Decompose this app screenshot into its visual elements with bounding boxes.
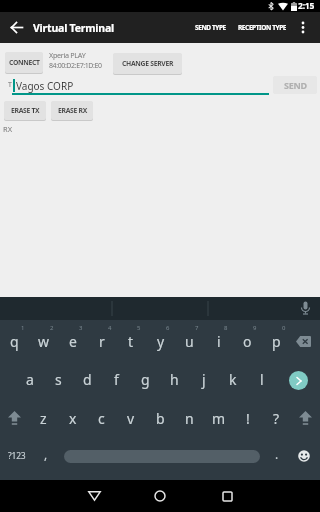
staticText: m: [212, 409, 226, 428]
button[interactable]: !: [233, 401, 262, 435]
button[interactable]: j: [189, 362, 218, 396]
staticText: n: [185, 409, 194, 428]
staticText: CONNECT: [9, 58, 40, 67]
staticText: b: [156, 409, 165, 428]
button[interactable]: z: [29, 401, 58, 435]
staticText: c: [98, 409, 105, 428]
button[interactable]: h: [160, 362, 189, 396]
staticText: CHANGE SERVER: [122, 59, 174, 68]
button[interactable]: CHANGE SERVER: [113, 53, 182, 74]
button[interactable]: q: [0, 324, 29, 358]
button[interactable]: d: [73, 362, 102, 396]
button[interactable]: b: [146, 401, 175, 435]
staticText: f: [114, 370, 119, 389]
button[interactable]: a: [15, 362, 44, 396]
button[interactable]: ERASE TX: [4, 101, 46, 120]
staticText: p: [272, 332, 281, 351]
button[interactable]: SEND: [273, 76, 317, 94]
button[interactable]: ,: [33, 437, 58, 471]
staticText: SEND TYPE: [195, 23, 226, 32]
staticText: 1: [21, 324, 25, 332]
staticText: r: [99, 332, 105, 351]
staticText: h: [170, 370, 179, 389]
button[interactable]: [0, 297, 320, 320]
button[interactable]: [281, 362, 315, 398]
staticText: d: [83, 370, 92, 389]
button[interactable]: v: [116, 401, 145, 435]
button[interactable]: ?: [262, 401, 291, 435]
button[interactable]: [288, 324, 318, 358]
staticText: q: [10, 332, 19, 351]
staticText: .: [275, 446, 279, 462]
staticText: o: [243, 332, 252, 351]
staticText: x: [69, 409, 77, 428]
button[interactable]: [295, 15, 313, 40]
button[interactable]: SEND TYPE: [188, 12, 232, 43]
staticText: t: [128, 332, 134, 351]
button[interactable]: [5, 15, 29, 39]
button[interactable]: g: [131, 362, 160, 396]
button[interactable]: [0, 401, 29, 435]
staticText: 3: [79, 324, 83, 332]
staticText: s: [55, 370, 62, 389]
button[interactable]: .: [264, 437, 289, 471]
staticText: 7: [195, 324, 199, 332]
staticText: ,: [44, 446, 48, 462]
button[interactable]: o: [233, 324, 262, 358]
button[interactable]: e: [58, 324, 87, 358]
button[interactable]: [291, 401, 320, 435]
button[interactable]: ?123: [0, 439, 33, 473]
staticText: 5: [137, 324, 141, 332]
button[interactable]: k: [218, 362, 247, 396]
button[interactable]: c: [87, 401, 116, 435]
button[interactable]: p: [262, 324, 291, 358]
staticText: i: [217, 332, 221, 351]
button[interactable]: f: [102, 362, 131, 396]
staticText: ERASE RX: [58, 106, 87, 115]
staticText: RECEPTION TYPE: [238, 23, 287, 32]
button[interactable]: i: [204, 324, 233, 358]
staticText: 84:00:D2:E7:1D:E0: [49, 61, 102, 71]
staticText: ERASE TX: [11, 106, 40, 115]
button[interactable]: t: [116, 324, 145, 358]
staticText: a: [26, 370, 34, 389]
staticText: z: [40, 409, 47, 428]
staticText: 2: [50, 324, 54, 332]
button[interactable]: CONNECT: [5, 52, 43, 73]
button[interactable]: y: [146, 324, 175, 358]
button[interactable]: [140, 480, 180, 512]
button[interactable]: Vagos CORP: [16, 78, 266, 93]
staticText: 4: [108, 324, 112, 332]
button[interactable]: ERASE RX: [51, 101, 93, 120]
staticText: 9: [253, 324, 257, 332]
button[interactable]: n: [175, 401, 204, 435]
staticText: !: [246, 409, 250, 428]
staticText: w: [38, 332, 50, 351]
button[interactable]: [207, 480, 247, 512]
staticText: RX: [3, 124, 13, 134]
staticText: u: [185, 332, 194, 351]
staticText: 8: [224, 324, 228, 332]
button[interactable]: r: [87, 324, 116, 358]
button[interactable]: x: [58, 401, 87, 435]
staticText: 0: [282, 324, 286, 332]
staticText: j: [202, 370, 206, 389]
button[interactable]: s: [44, 362, 73, 396]
button[interactable]: [290, 439, 318, 473]
staticText: Xperia PLAY: [49, 50, 86, 60]
staticText: v: [127, 409, 135, 428]
button[interactable]: [74, 480, 114, 512]
button[interactable]: u: [175, 324, 204, 358]
button[interactable]: w: [29, 324, 58, 358]
button[interactable]: m: [204, 401, 233, 435]
staticText: ?: [273, 409, 280, 428]
staticText: k: [229, 370, 237, 389]
staticText: SEND: [284, 79, 307, 91]
button[interactable]: l: [247, 362, 276, 396]
staticText: T: [8, 80, 12, 90]
button[interactable]: RECEPTION TYPE: [231, 12, 293, 43]
button[interactable]: [64, 450, 260, 463]
staticText: l: [260, 370, 264, 389]
staticText: 2:15: [298, 0, 315, 12]
staticText: ?123: [8, 450, 26, 462]
